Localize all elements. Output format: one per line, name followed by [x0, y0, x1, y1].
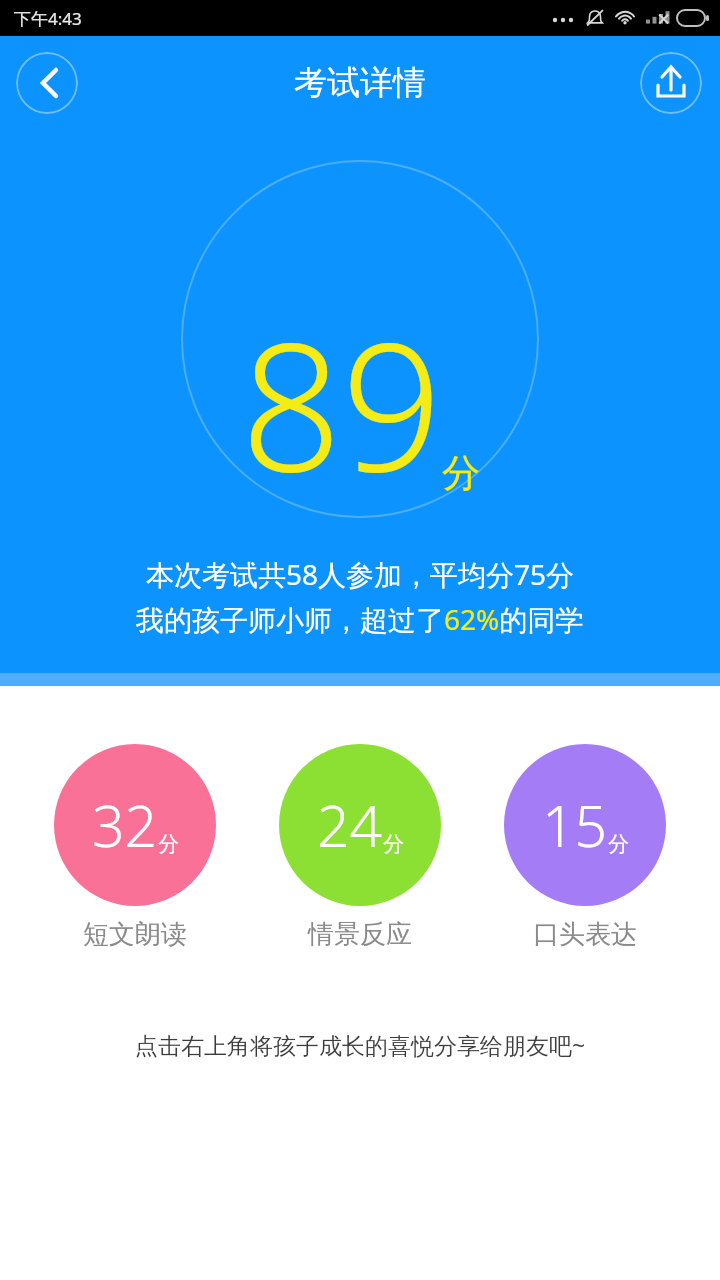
- staticText: 点击右上角将孩子成长的喜悦分享给朋友吧~: [0, 1029, 720, 1060]
- button[interactable]: Back: [16, 52, 78, 114]
- staticText: 我的孩子师小师，超过了62%的同学: [136, 600, 584, 638]
- staticText: 下午4:43: [14, 7, 82, 30]
- button[interactable]: 32: [54, 744, 216, 951]
- staticText: 本次考试共58人参加，平均分75分: [146, 555, 575, 593]
- staticText: 15: [542, 786, 608, 864]
- staticText: 口头表达: [533, 918, 637, 951]
- button[interactable]: 24: [279, 744, 441, 951]
- staticText: 24: [317, 786, 383, 864]
- staticText: 89: [241, 283, 442, 523]
- staticText: 分: [383, 831, 404, 857]
- staticText: 情景反应: [308, 918, 412, 951]
- staticText: 分: [158, 831, 179, 857]
- staticText: 分: [442, 449, 480, 497]
- button[interactable]: 15: [504, 744, 666, 951]
- staticText: 考试详情: [294, 62, 426, 104]
- staticText: 分: [608, 831, 629, 857]
- staticText: 短文朗读: [83, 918, 187, 951]
- staticText: 32: [92, 786, 158, 864]
- button[interactable]: Share: [640, 52, 702, 114]
